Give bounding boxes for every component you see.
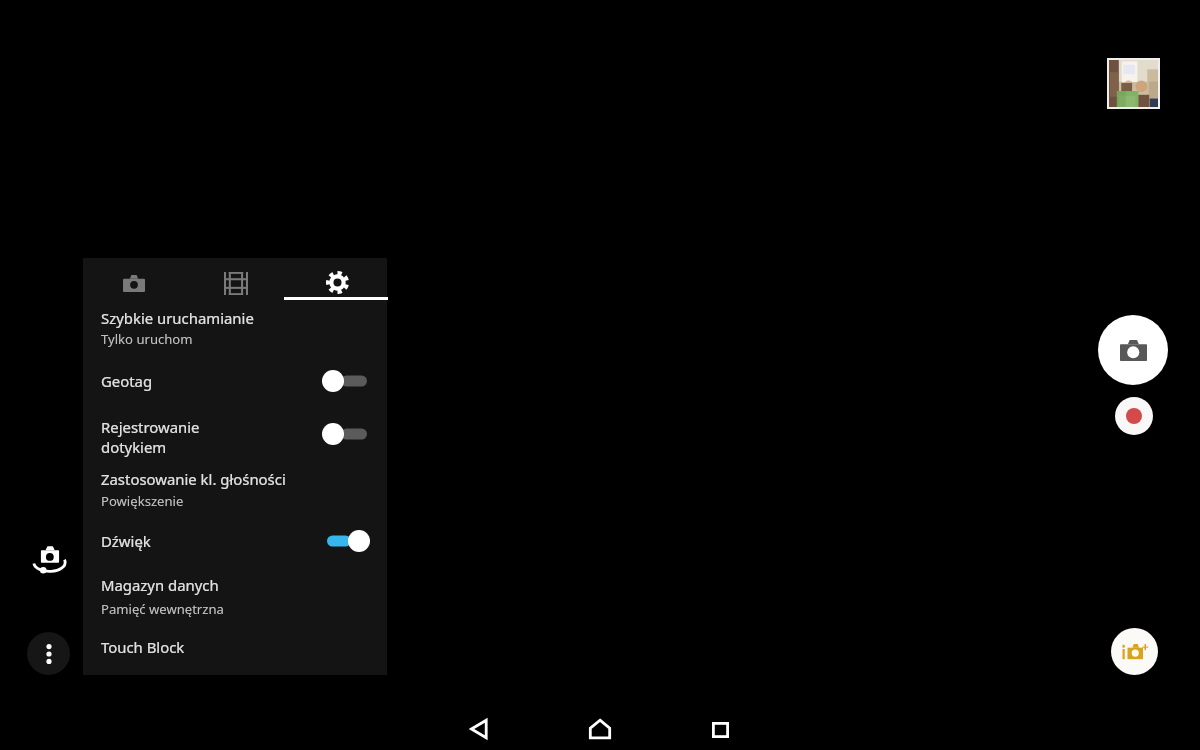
staticText: Rejestrowanie xyxy=(101,417,200,437)
staticText: Pamięć wewnętrzna xyxy=(101,600,224,618)
staticText: Touch Block xyxy=(101,637,185,657)
staticText: Powiększenie xyxy=(101,492,184,510)
staticText: dotykiem xyxy=(101,437,167,457)
button[interactable]: Toggle on xyxy=(327,530,370,552)
button[interactable]: Take photo xyxy=(1098,315,1168,385)
staticText: Szybkie uruchamianie xyxy=(101,308,254,328)
button[interactable]: Video settings xyxy=(206,261,266,305)
staticText: Geotag xyxy=(101,371,153,391)
staticText: Zastosowanie kl. głośności xyxy=(101,469,286,489)
button[interactable]: Open gallery xyxy=(1109,60,1158,107)
button[interactable]: Home xyxy=(576,705,624,750)
button[interactable]: Zastosowanie kl. głośności, Powiększenie xyxy=(83,466,387,514)
button[interactable]: More options xyxy=(27,632,70,675)
button[interactable]: Camera mode xyxy=(1111,628,1158,675)
button[interactable]: Geotag, off xyxy=(83,360,387,404)
staticText: Dźwięk xyxy=(101,531,151,551)
button[interactable]: Dźwięk, on xyxy=(83,524,387,566)
button[interactable]: Toggle off xyxy=(322,370,367,392)
button[interactable]: Back xyxy=(455,705,503,750)
staticText: Magazyn danych xyxy=(101,575,219,595)
button[interactable]: Rejestrowanie dotykiem, off xyxy=(83,412,387,464)
button[interactable]: Photo settings xyxy=(104,261,164,305)
staticText: Tylko uruchom xyxy=(101,330,193,348)
button[interactable]: General settings xyxy=(307,260,367,304)
button[interactable]: Magazyn danych, Pamięć wewnętrzna xyxy=(83,570,387,622)
button[interactable]: Touch Block xyxy=(83,632,387,668)
button[interactable]: Toggle off xyxy=(322,423,367,445)
button[interactable]: Szybkie uruchamianie, Tylko uruchom xyxy=(83,304,387,354)
button[interactable]: Record video xyxy=(1115,397,1153,435)
button[interactable]: Switch camera xyxy=(26,536,72,582)
button[interactable]: Recent apps xyxy=(696,706,744,750)
